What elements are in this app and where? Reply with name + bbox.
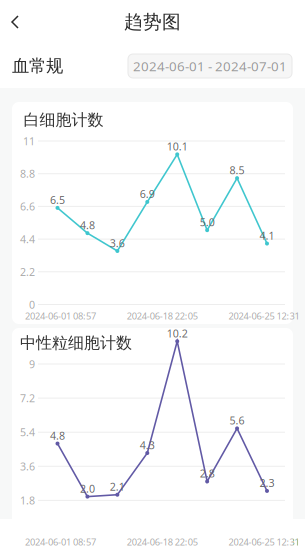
staticText: 4.3 [140,438,155,452]
staticText: 2.3 [259,476,274,490]
staticText: 2024-06-01 08:57 [25,310,96,322]
staticText: 2024-06-01 - 2024-07-01 [133,57,287,75]
staticText: 6.5 [50,193,65,207]
staticText: 3.6 [110,236,125,250]
staticText: 5.6 [230,413,245,427]
staticText: 4.1 [259,228,274,243]
staticText: 2.1 [110,480,125,494]
staticText: 2024-06-25 12:31 [228,310,299,322]
staticText: 中性粒细胞计数 [20,333,132,353]
button[interactable]: Back [6,11,34,33]
staticText: 2.0 [80,481,95,496]
staticText: 4.8 [80,218,95,232]
staticText: 7.2 [20,391,35,405]
staticText: 8.8 [20,167,35,181]
staticText: 白细胞计数 [23,110,103,130]
staticText: 6.6 [20,199,35,213]
staticText: 2024-06-18 22:05 [127,310,198,322]
staticText: 8.5 [230,163,245,177]
staticText: 2024-06-25 12:31 [228,536,299,548]
button[interactable]: 2024-06-01 - 2024-07-01 [128,54,292,78]
staticText: 2.2 [20,265,35,279]
staticText: 2.8 [200,466,215,481]
staticText: 1.8 [20,493,35,507]
staticText: 3.6 [20,459,35,473]
staticText: 5.0 [200,215,215,229]
staticText: 4.8 [50,428,65,443]
staticText: 4.4 [20,232,35,246]
staticText: 10.1 [167,139,188,153]
staticText: 5.4 [20,425,35,439]
staticText: 6.9 [140,187,155,201]
staticText: 11 [23,134,35,148]
staticText: 10.2 [167,326,188,340]
staticText: 趋势图 [124,10,181,33]
staticText: 9 [29,357,35,371]
staticText: 2024-06-01 08:57 [25,536,96,548]
staticText: 血常规 [12,55,63,77]
staticText: 0 [29,297,35,312]
staticText: 2024-06-18 22:05 [127,536,198,548]
